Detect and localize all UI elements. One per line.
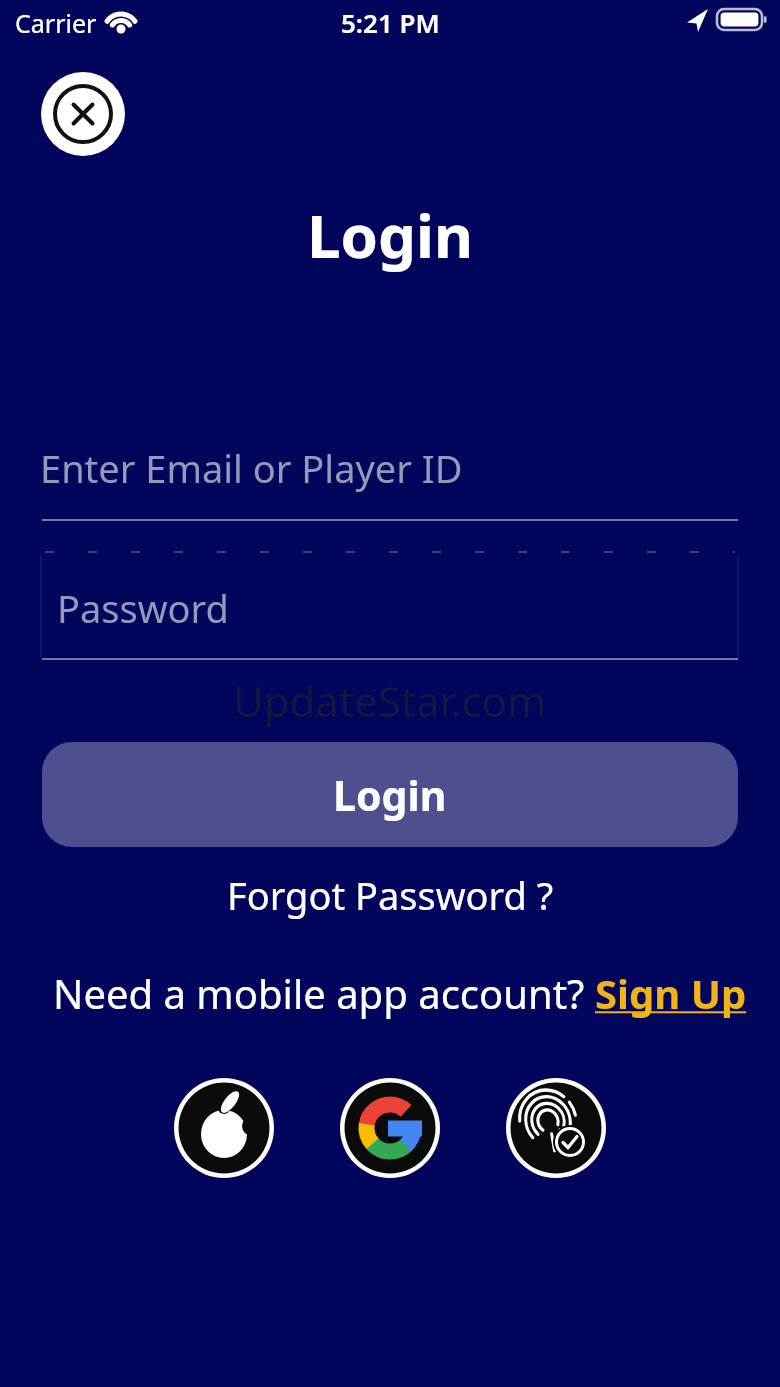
staticText: 5:21 PM [341, 5, 440, 40]
staticText: Need a mobile app account? [53, 966, 595, 1020]
staticText: Password [57, 582, 229, 634]
staticText: Enter Email or Player ID [40, 442, 463, 494]
staticText: Login [307, 194, 473, 276]
button[interactable] [174, 1078, 274, 1178]
button[interactable] [41, 72, 125, 156]
button[interactable]: Sign Up [595, 966, 747, 1020]
button[interactable] [340, 1078, 440, 1178]
button[interactable]: Login [42, 742, 738, 847]
button[interactable] [506, 1078, 606, 1178]
button[interactable]: Forgot Password ? [227, 869, 554, 921]
staticText: UpdateStar.com [233, 672, 547, 729]
staticText: Carrier [15, 6, 97, 40]
staticText: Login [333, 767, 447, 823]
